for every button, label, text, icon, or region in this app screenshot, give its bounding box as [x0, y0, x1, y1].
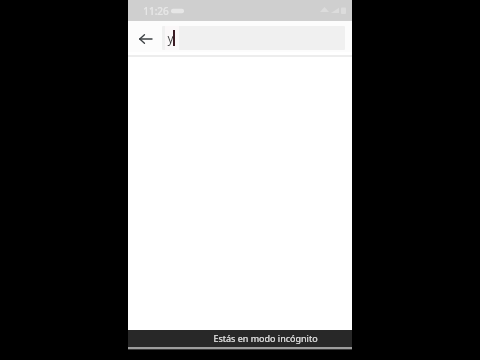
button[interactable]: Estás en modo incógnito	[128, 330, 352, 347]
staticText: 11:26	[143, 4, 169, 18]
staticText: Estás en modo incógnito	[213, 332, 318, 344]
button[interactable]: Back	[128, 21, 162, 52]
button[interactable]: y	[162, 26, 345, 50]
staticText: y	[167, 30, 174, 46]
